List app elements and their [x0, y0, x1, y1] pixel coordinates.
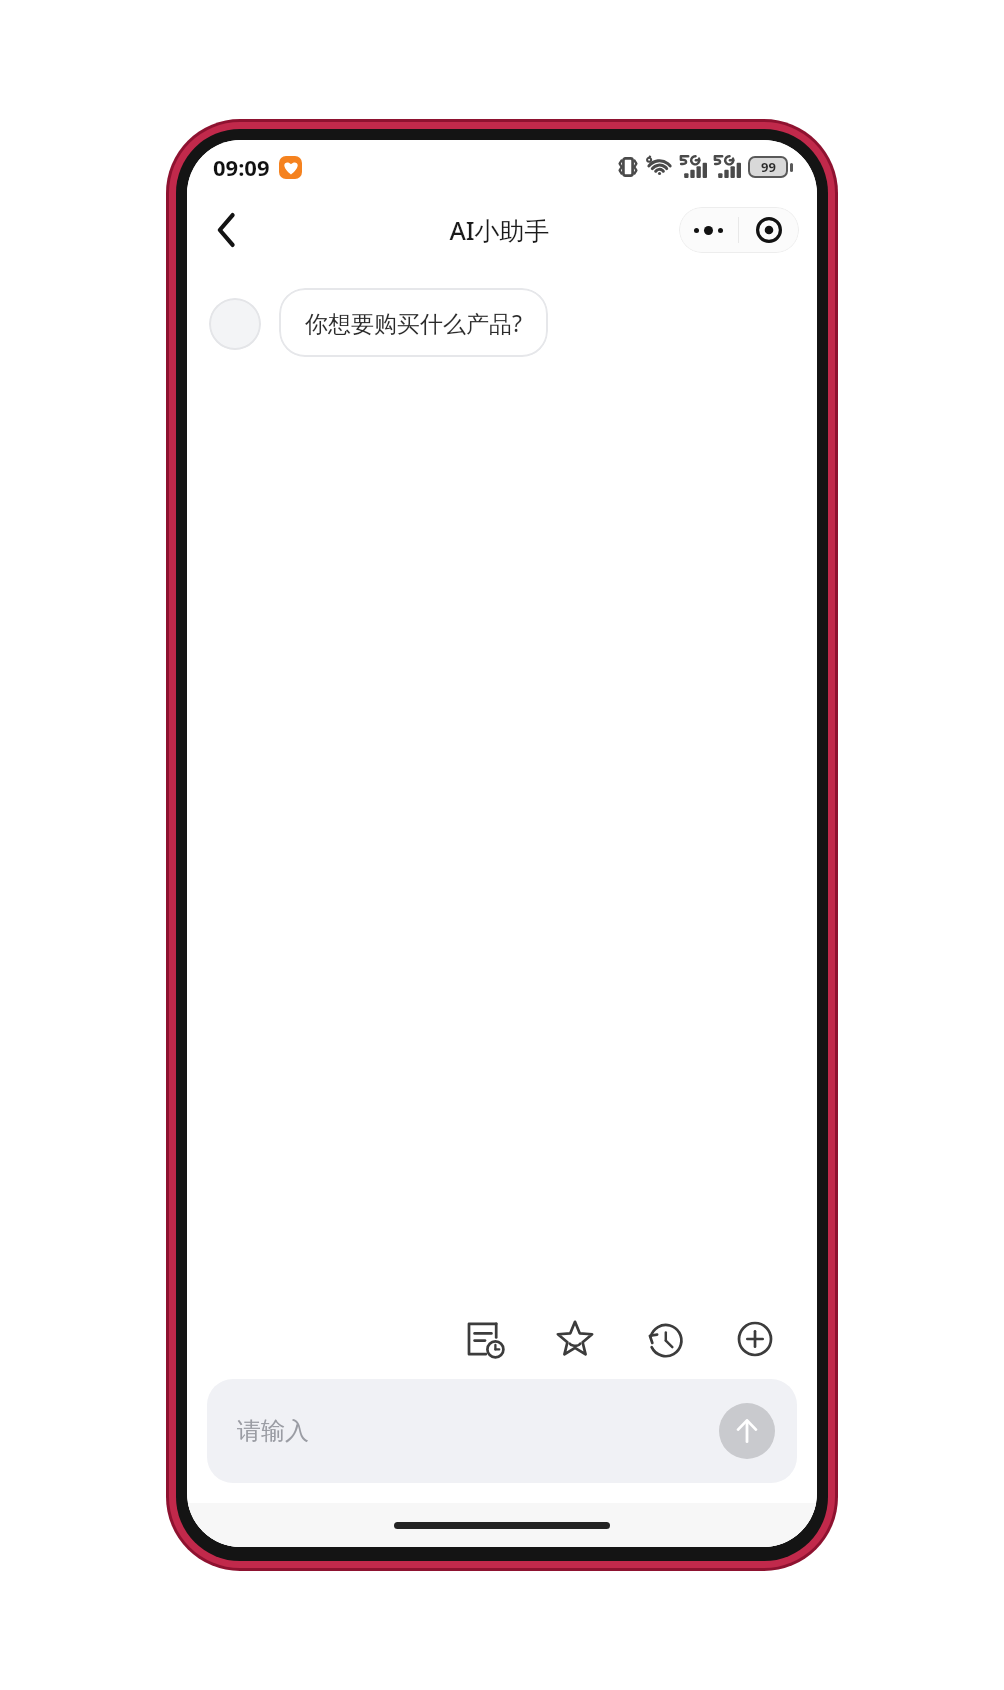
- staticText: 你想要购买什么产品?: [305, 307, 522, 338]
- button[interactable]: More: [679, 207, 738, 253]
- button[interactable]: Assistant avatar: [209, 298, 261, 350]
- staticText: 09:09: [213, 152, 270, 182]
- button[interactable]: 请输入: [207, 1379, 797, 1483]
- staticText: 99: [761, 158, 776, 176]
- button[interactable]: Notes: [457, 1311, 513, 1367]
- button[interactable]: 你想要购买什么产品?: [279, 288, 548, 357]
- button[interactable]: Add: [727, 1311, 783, 1367]
- button[interactable]: Send: [719, 1403, 775, 1459]
- button[interactable]: History: [637, 1311, 693, 1367]
- staticText: 请输入: [237, 1416, 309, 1446]
- button[interactable]: Back: [199, 202, 255, 258]
- button[interactable]: Favorites: [547, 1311, 603, 1367]
- staticText: AI小助手: [449, 213, 550, 247]
- button[interactable]: Close: [739, 207, 799, 253]
